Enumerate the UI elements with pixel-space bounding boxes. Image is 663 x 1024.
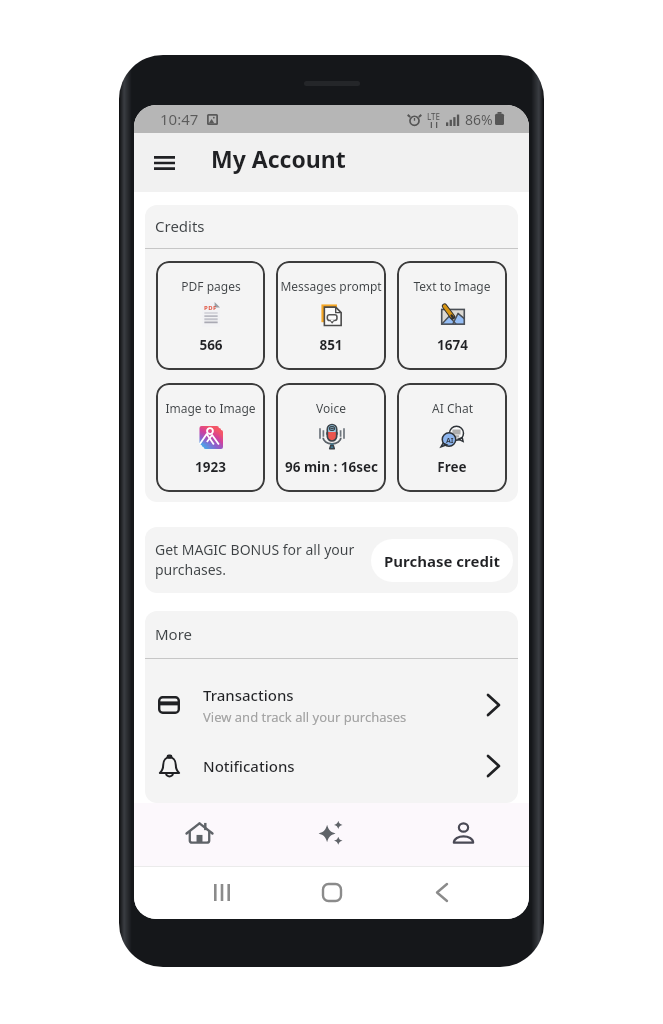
staticText: 96 min : 16sec [285,458,378,476]
staticText: Image to Image [165,400,256,416]
staticText: Voice [316,400,346,416]
staticText: PDF [204,304,217,312]
button[interactable]: Messages prompt [276,261,386,370]
button[interactable]: Back [387,866,497,919]
button[interactable]: Image to Image [156,383,265,492]
staticText: View and track all your purchases [203,708,407,726]
staticText: My Account [211,143,346,174]
staticText: Notifications [203,756,295,776]
staticText: 10:47 [160,109,199,129]
staticText: AI [446,436,454,446]
staticText: Get MAGIC BONUS for all your purchases. [155,540,365,580]
button[interactable]: Text to Image [397,261,507,370]
button[interactable]: Magic [265,803,397,862]
button[interactable]: Transactions [145,672,518,738]
button[interactable]: Voice [276,383,386,492]
staticText: More [155,624,193,644]
staticText: Messages prompt [280,278,382,294]
button[interactable]: Home [134,803,265,862]
button[interactable]: Profile [397,803,529,862]
staticText: 851 [319,336,343,354]
staticText: 1923 [195,458,226,476]
staticText: Transactions [203,685,294,705]
button[interactable]: Notifications [145,738,518,794]
staticText: 1674 [437,336,468,354]
button[interactable]: Purchase credit [371,539,513,582]
staticText: Free [437,458,467,476]
button[interactable]: AI Chat [397,383,507,492]
button[interactable]: Recents [166,866,277,919]
staticText: Text to Image [413,278,491,294]
staticText: LTE [427,111,441,122]
staticText: PDF pages [181,278,241,294]
staticText: AI Chat [432,400,473,416]
staticText: 86% [465,110,493,129]
staticText: Credits [155,216,205,236]
staticText: Purchase credit [384,551,500,571]
button[interactable]: PDF pages [156,261,265,370]
staticText: 566 [199,336,223,354]
button[interactable]: Menu [142,141,186,185]
button[interactable]: Home [277,866,387,919]
